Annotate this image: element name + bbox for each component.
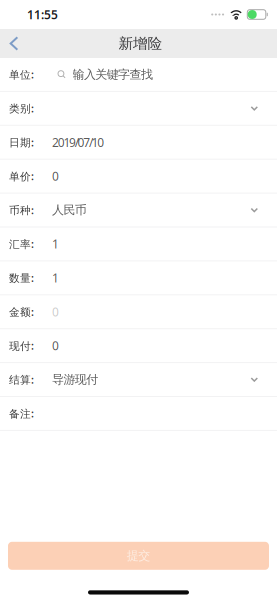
staticText: 0 xyxy=(52,338,59,354)
button[interactable]: Back xyxy=(0,29,28,58)
staticText: 1 xyxy=(52,270,59,286)
staticText: 日期: xyxy=(9,135,34,149)
staticText: 汇率: xyxy=(9,237,34,251)
staticText: 导游现付 xyxy=(52,372,98,387)
staticText: 备注: xyxy=(9,406,34,421)
button[interactable]: 类别: xyxy=(0,92,277,125)
staticText: 输入关键字查找 xyxy=(72,67,153,82)
staticText: 2019/07/10 xyxy=(52,134,104,150)
staticText: 1 xyxy=(52,236,59,252)
staticText: 结算: xyxy=(9,372,34,387)
staticText: 单价: xyxy=(9,169,34,183)
staticText: 人民币 xyxy=(52,203,87,217)
staticText: 新增险 xyxy=(118,34,162,52)
staticText: 11:55 xyxy=(27,6,58,22)
staticText: 类别: xyxy=(9,101,34,115)
staticText: 金额: xyxy=(9,305,34,319)
staticText: 数量: xyxy=(9,271,34,285)
button[interactable]: 提交 xyxy=(8,542,269,570)
staticText: 单位: xyxy=(9,67,34,82)
staticText: 提交 xyxy=(127,548,150,563)
button[interactable]: 单位 搜索 xyxy=(0,58,277,91)
staticText: 0 xyxy=(52,304,59,320)
staticText: 币种: xyxy=(9,203,34,217)
button[interactable]: 币种: xyxy=(0,194,277,226)
button[interactable]: 结算: xyxy=(0,363,277,396)
staticText: 0 xyxy=(52,168,59,184)
staticText: 现付: xyxy=(9,339,34,353)
